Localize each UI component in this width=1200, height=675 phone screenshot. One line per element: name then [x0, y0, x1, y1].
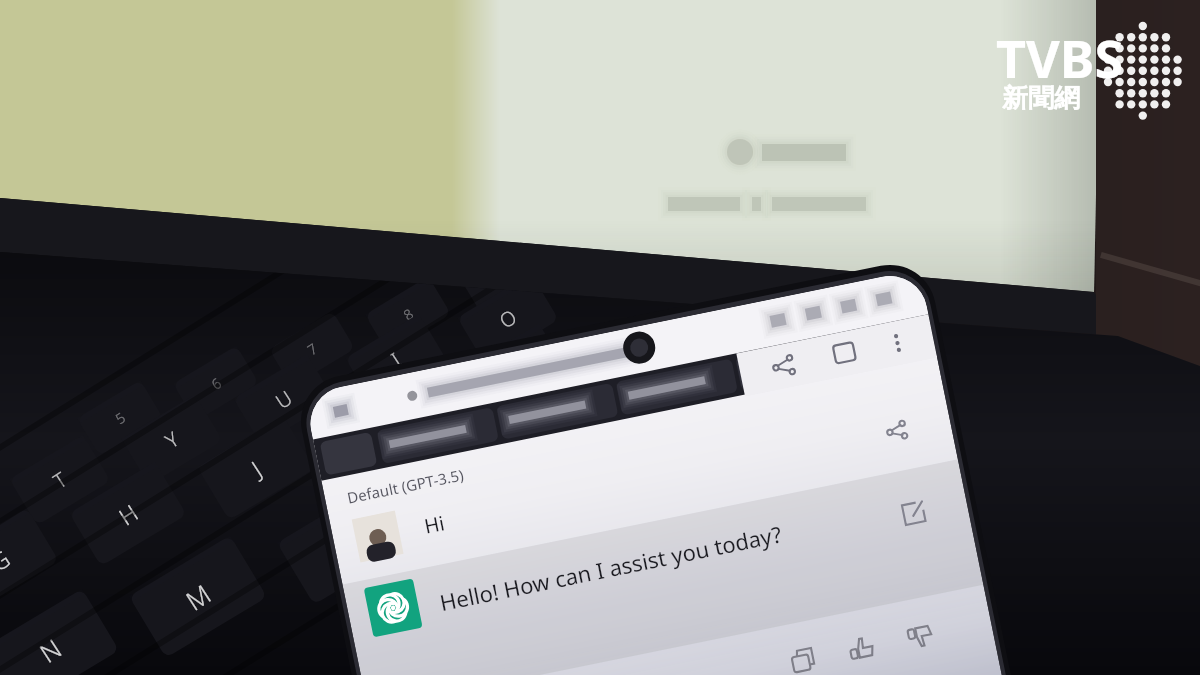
button[interactable]: Photo: ChatGPT open on a phone resting o…	[0, 0, 1200, 675]
